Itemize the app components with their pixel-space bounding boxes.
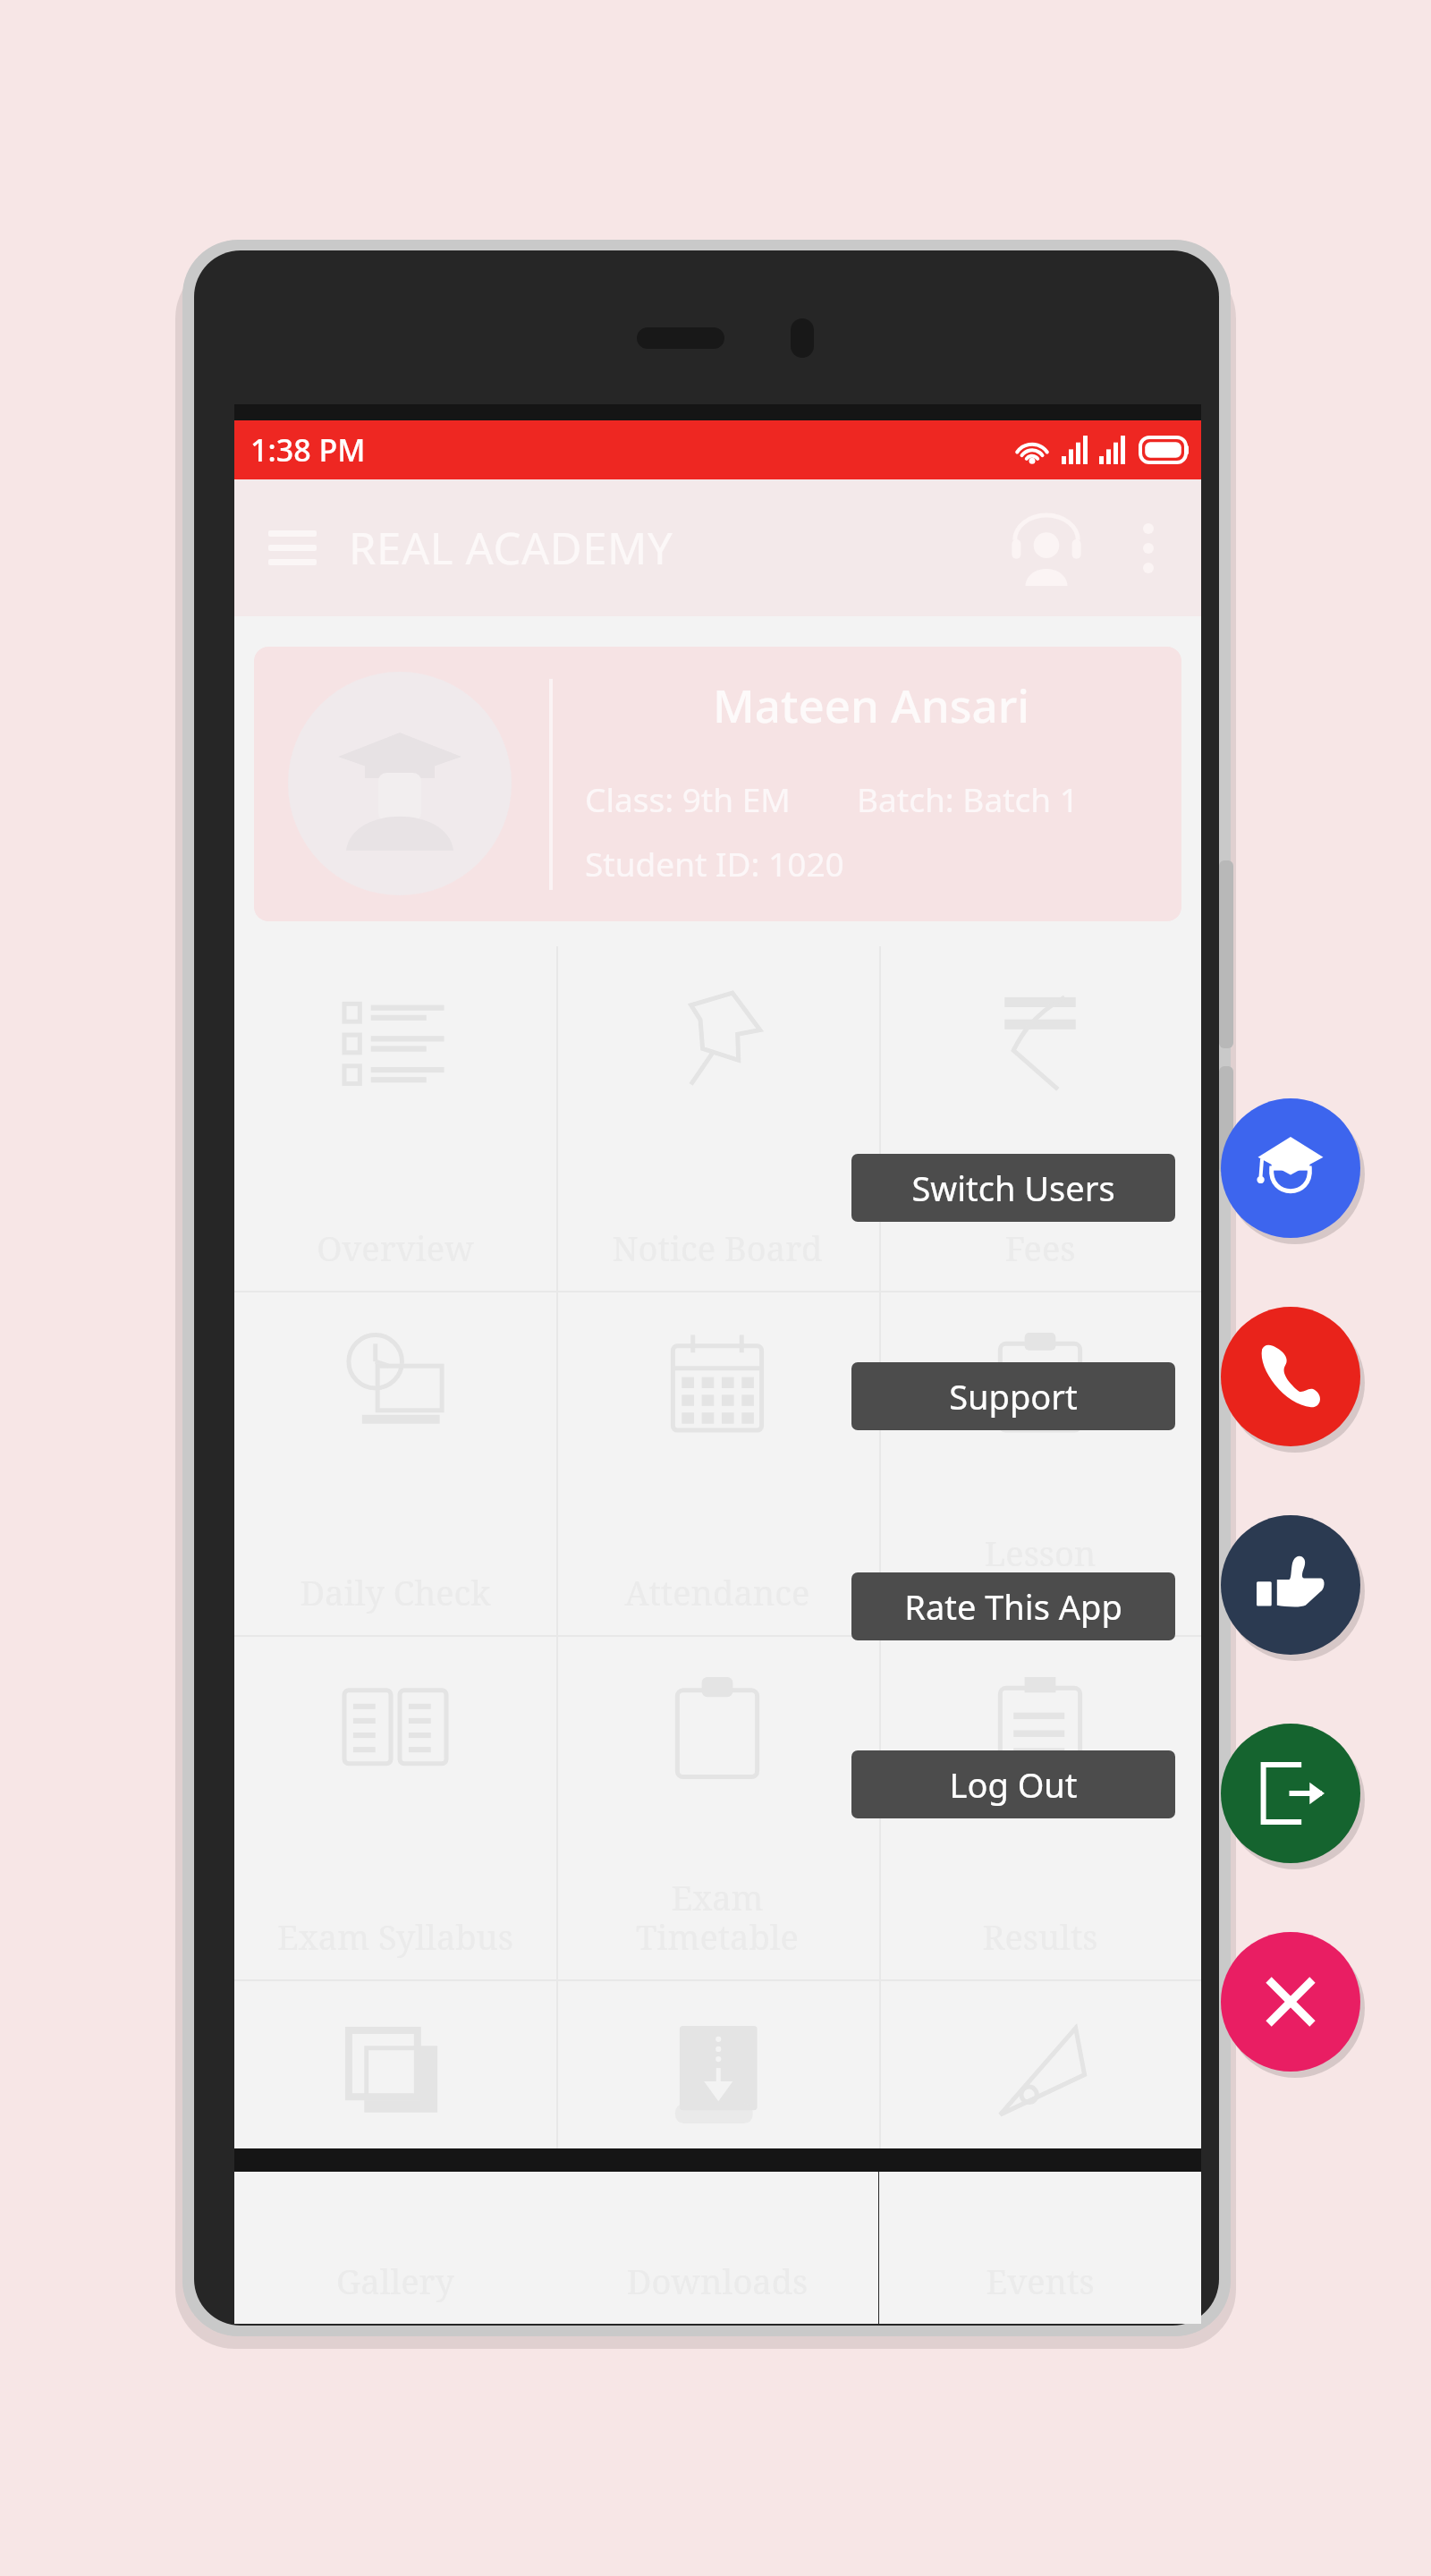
button[interactable]: Open navigation menu [258,513,327,583]
staticText: Batch: Batch 1 [857,776,1079,821]
staticText: Mateen Ansari [585,674,1157,735]
button[interactable]: Results [879,1635,1201,1979]
staticText: Switch Users [911,1165,1115,1211]
staticText: Class: 9th EM [585,776,791,821]
staticText: Daily Check [234,1569,556,1615]
button[interactable]: Notice Board [556,946,878,1291]
staticText: Student ID: 1020 [585,841,844,885]
staticText: Events [879,2258,1201,2304]
staticText: 1:38 PM [250,429,366,470]
button[interactable]: Exam Timetable [556,1635,878,1979]
button[interactable]: Overview [234,946,556,1291]
button[interactable]: Close menu [1221,1932,1360,2072]
button[interactable]: Daily Check [234,1291,556,1635]
button[interactable]: Attendance [556,1291,878,1635]
button[interactable]: Switch Users [851,1154,1175,1222]
button[interactable]: Downloads [556,1979,878,2324]
button[interactable]: Fees [879,946,1201,1291]
staticText: Attendance [556,1569,878,1615]
button[interactable]: Support [1221,1307,1360,1446]
staticText: Overview [234,1224,556,1271]
staticText: Log Out [949,1761,1078,1808]
button[interactable]: Support [1003,504,1090,592]
staticText: Support [949,1373,1078,1419]
button[interactable]: Switch Users [1221,1098,1360,1238]
button[interactable]: Log Out [1221,1724,1360,1863]
button[interactable]: Support [851,1362,1175,1430]
button[interactable]: Rate This App [851,1572,1175,1640]
staticText: Gallery [234,2258,556,2304]
button[interactable]: Lesson Timetable [879,1291,1201,1635]
staticText: Lesson Timetable [879,1529,1201,1615]
button[interactable]: Log Out [851,1750,1175,1818]
staticText: Exam Syllabus [234,1913,556,1960]
staticText: Rate This App [904,1583,1122,1630]
button[interactable]: Exam Syllabus [234,1635,556,1979]
button[interactable]: Gallery [234,1979,556,2324]
staticText: REAL ACADEMY [349,518,673,578]
button[interactable]: Rate This App [1221,1515,1360,1655]
button[interactable]: Events [879,1979,1201,2324]
